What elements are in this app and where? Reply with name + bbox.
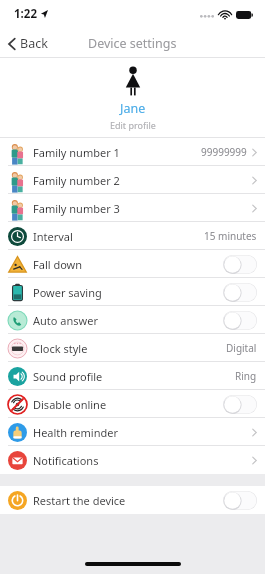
staticText: 1:22 (14, 6, 37, 22)
staticText: Disable online (33, 397, 107, 412)
staticText: Health reminder (33, 425, 118, 440)
button[interactable]: Family number 1 (0, 138, 265, 166)
staticText: Power saving (33, 285, 102, 300)
staticText: Restart the device (33, 493, 126, 508)
staticText: Fall down (33, 257, 83, 272)
button[interactable]: Toggle (223, 491, 257, 510)
button[interactable]: Auto answer (0, 306, 265, 334)
staticText: 99999999 (201, 145, 247, 159)
button[interactable]: Jane (0, 58, 265, 137)
button[interactable]: Back (0, 31, 56, 56)
button[interactable]: Clock style (0, 334, 265, 362)
button[interactable]: Toggle (223, 283, 257, 302)
staticText: Family number 2 (33, 173, 120, 188)
staticText: Notifications (33, 453, 99, 468)
button[interactable]: Toggle (223, 395, 257, 414)
button[interactable]: Toggle (223, 255, 257, 274)
staticText: Device settings (88, 35, 177, 52)
button[interactable]: Family number 3 (0, 194, 265, 222)
staticText: Auto answer (33, 313, 98, 328)
staticText: 15 minutes (204, 229, 257, 243)
button[interactable]: Family number 2 (0, 166, 265, 194)
button[interactable]: Interval (0, 222, 265, 250)
button[interactable]: Power saving (0, 278, 265, 306)
staticText: Back (20, 35, 48, 52)
staticText: Family number 3 (33, 201, 120, 216)
staticText: Sound profile (33, 369, 103, 384)
button[interactable]: Health reminder (0, 418, 265, 446)
staticText: Clock style (33, 341, 88, 356)
staticText: Edit profile (110, 119, 156, 131)
button[interactable]: Restart the device (0, 486, 265, 514)
button[interactable]: Disable online (0, 390, 265, 418)
staticText: Family number 1 (33, 145, 120, 160)
button[interactable]: Notifications (0, 446, 265, 474)
staticText: Interval (33, 229, 73, 244)
staticText: Digital (226, 341, 257, 355)
staticText: Ring (235, 369, 257, 383)
staticText: Jane (120, 100, 146, 117)
button[interactable]: Fall down (0, 250, 265, 278)
button[interactable]: Toggle (223, 311, 257, 330)
button[interactable]: Sound profile (0, 362, 265, 390)
